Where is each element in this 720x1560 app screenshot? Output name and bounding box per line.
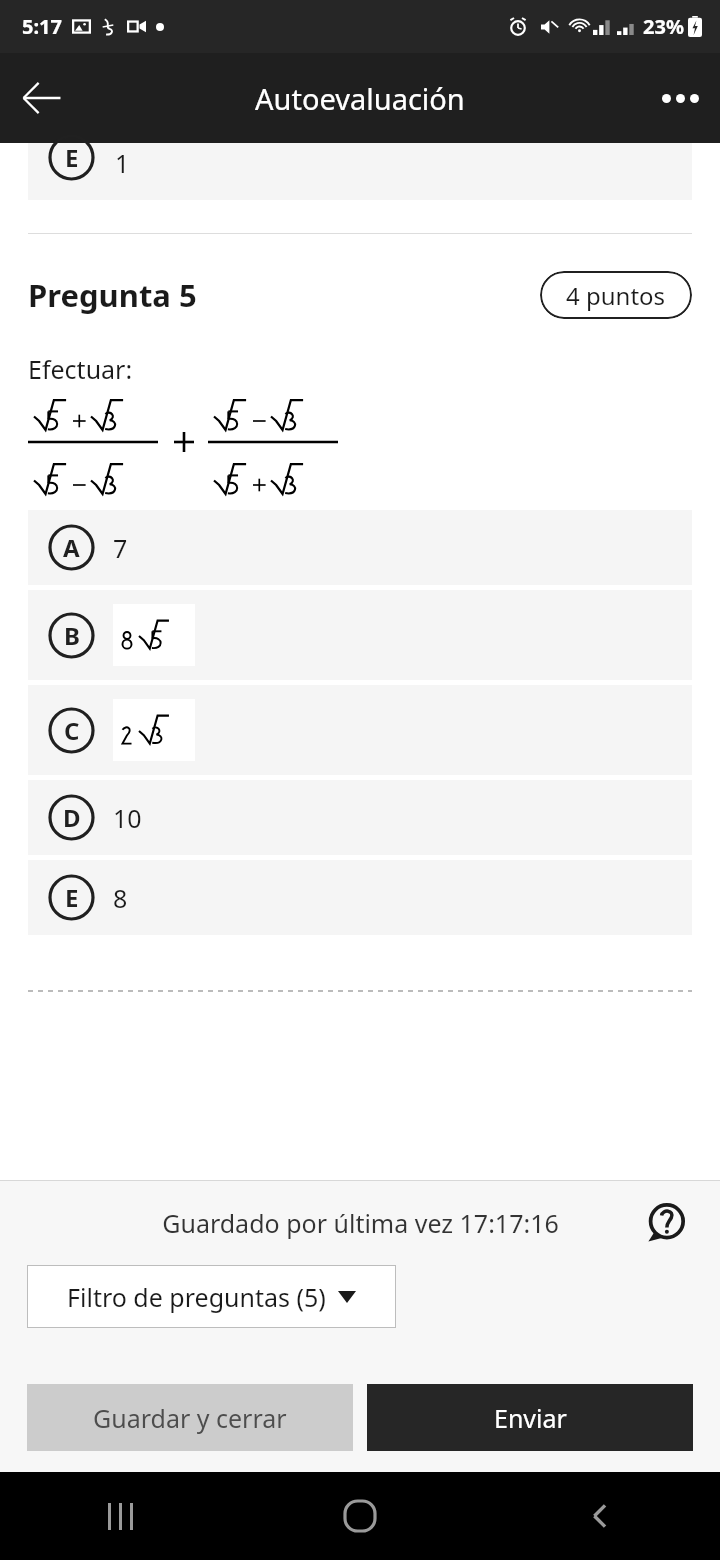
staticText: 10 [113,801,142,835]
staticText: Enviar [494,1401,567,1435]
staticText: A [63,531,80,564]
staticText: E [65,141,79,174]
staticText: Autoevaluación [255,79,465,118]
button[interactable]: Enviar [367,1384,693,1451]
button[interactable]: Ayuda [638,1195,694,1251]
staticText: Guardar y cerrar [93,1401,287,1435]
staticText: 1 [115,146,130,180]
staticText: B [64,619,80,652]
button[interactable]: Más opciones [648,66,712,130]
staticText: Pregunta 5 [28,274,197,316]
staticText: E [65,881,79,914]
staticText: C [64,714,80,747]
button[interactable]: Atrás [480,1472,720,1560]
staticText: 4 puntos [566,279,666,312]
staticText: Guardado por última vez 17:17:16 [162,1206,559,1240]
button[interactable]: Atrás [10,66,74,130]
staticText: 5:17 [22,13,62,40]
button[interactable]: Recientes [0,1472,240,1560]
button[interactable]: E [28,860,692,935]
staticText: 23% [643,13,684,40]
staticText: Filtro de preguntas (5) [67,1280,326,1314]
button[interactable]: Guardar y cerrar [27,1384,353,1451]
button[interactable]: B [28,590,692,680]
button[interactable]: Inicio [240,1472,480,1560]
staticText: Efectuar: [28,352,133,386]
button[interactable]: D [28,780,692,855]
button[interactable]: E [28,143,692,200]
button[interactable]: A [28,510,692,585]
button[interactable]: Filtro de preguntas (5) [27,1265,396,1328]
staticText: D [63,801,81,834]
staticText: 8 [113,881,128,915]
staticText: 7 [113,531,128,565]
button[interactable]: 4 puntos [540,271,692,319]
button[interactable]: C [28,685,692,775]
